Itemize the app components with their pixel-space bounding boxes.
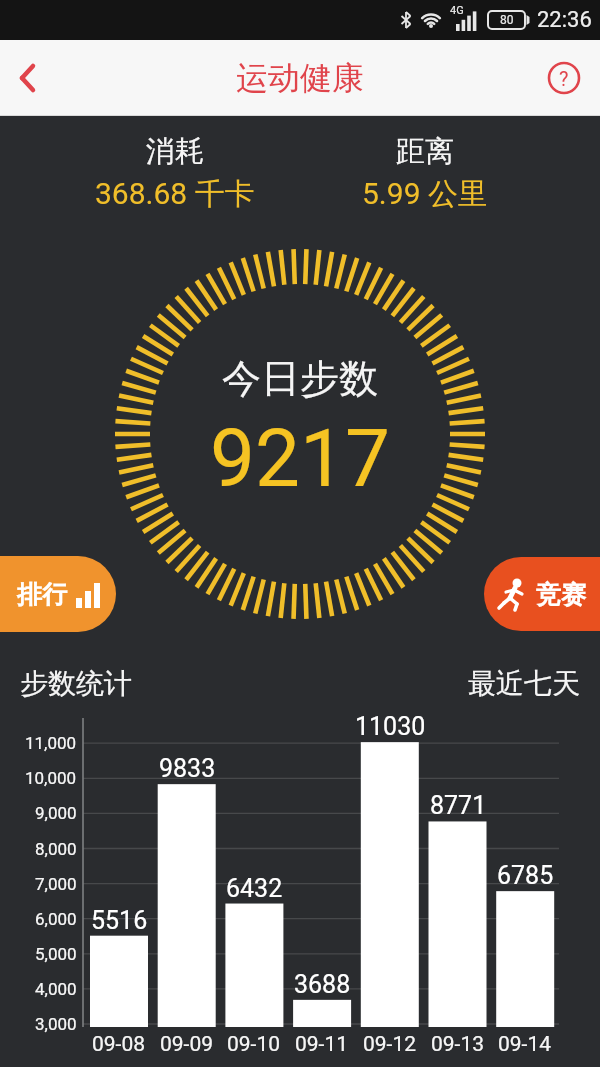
staticText: 3,000 — [35, 1014, 77, 1034]
staticText: 9217 — [210, 412, 390, 500]
staticText: 步数统计 — [20, 666, 132, 701]
staticText: 4G — [450, 4, 464, 17]
staticText: 5516 — [91, 906, 148, 935]
staticText: 排行 — [17, 579, 67, 610]
staticText: 9833 — [159, 754, 216, 783]
button[interactable] — [0, 40, 56, 116]
staticText: 6,000 — [35, 909, 77, 929]
staticText: 5.99 公里 — [362, 175, 488, 213]
staticText: 6432 — [226, 874, 283, 903]
staticText: 8,000 — [35, 839, 77, 859]
staticText: 09-08 — [92, 1032, 146, 1057]
staticText: 3688 — [294, 970, 351, 999]
staticText: 6785 — [497, 861, 554, 890]
staticText: 80 — [500, 13, 514, 27]
staticText: 运动健康 — [236, 58, 364, 98]
staticText: 09-14 — [498, 1032, 552, 1057]
staticText: 7,000 — [35, 874, 77, 894]
button[interactable]: 竞赛 — [484, 557, 600, 631]
button[interactable]: ? — [546, 60, 582, 96]
staticText: 11,000 — [25, 733, 77, 753]
staticText: 11030 — [355, 712, 426, 741]
staticText: 8771 — [430, 791, 487, 820]
staticText: 09-11 — [295, 1032, 349, 1057]
staticText: 22:36 — [537, 7, 592, 33]
staticText: 最近七天 — [468, 666, 580, 701]
staticText: 距离 — [396, 133, 454, 170]
staticText: 4,000 — [35, 979, 77, 999]
staticText: 5,000 — [35, 944, 77, 964]
staticText: 09-09 — [160, 1032, 214, 1057]
staticText: 消耗 — [146, 133, 204, 170]
staticText: 368.68 千卡 — [95, 175, 255, 213]
staticText: ? — [559, 67, 569, 90]
staticText: 竞赛 — [536, 579, 586, 610]
staticText: 10,000 — [25, 768, 77, 788]
staticText: 9,000 — [35, 803, 77, 823]
staticText: 09-12 — [363, 1032, 417, 1057]
staticText: 今日步数 — [222, 354, 378, 403]
button[interactable]: 排行 — [0, 556, 116, 632]
staticText: 09-10 — [227, 1032, 281, 1057]
staticText: 09-13 — [431, 1032, 485, 1057]
